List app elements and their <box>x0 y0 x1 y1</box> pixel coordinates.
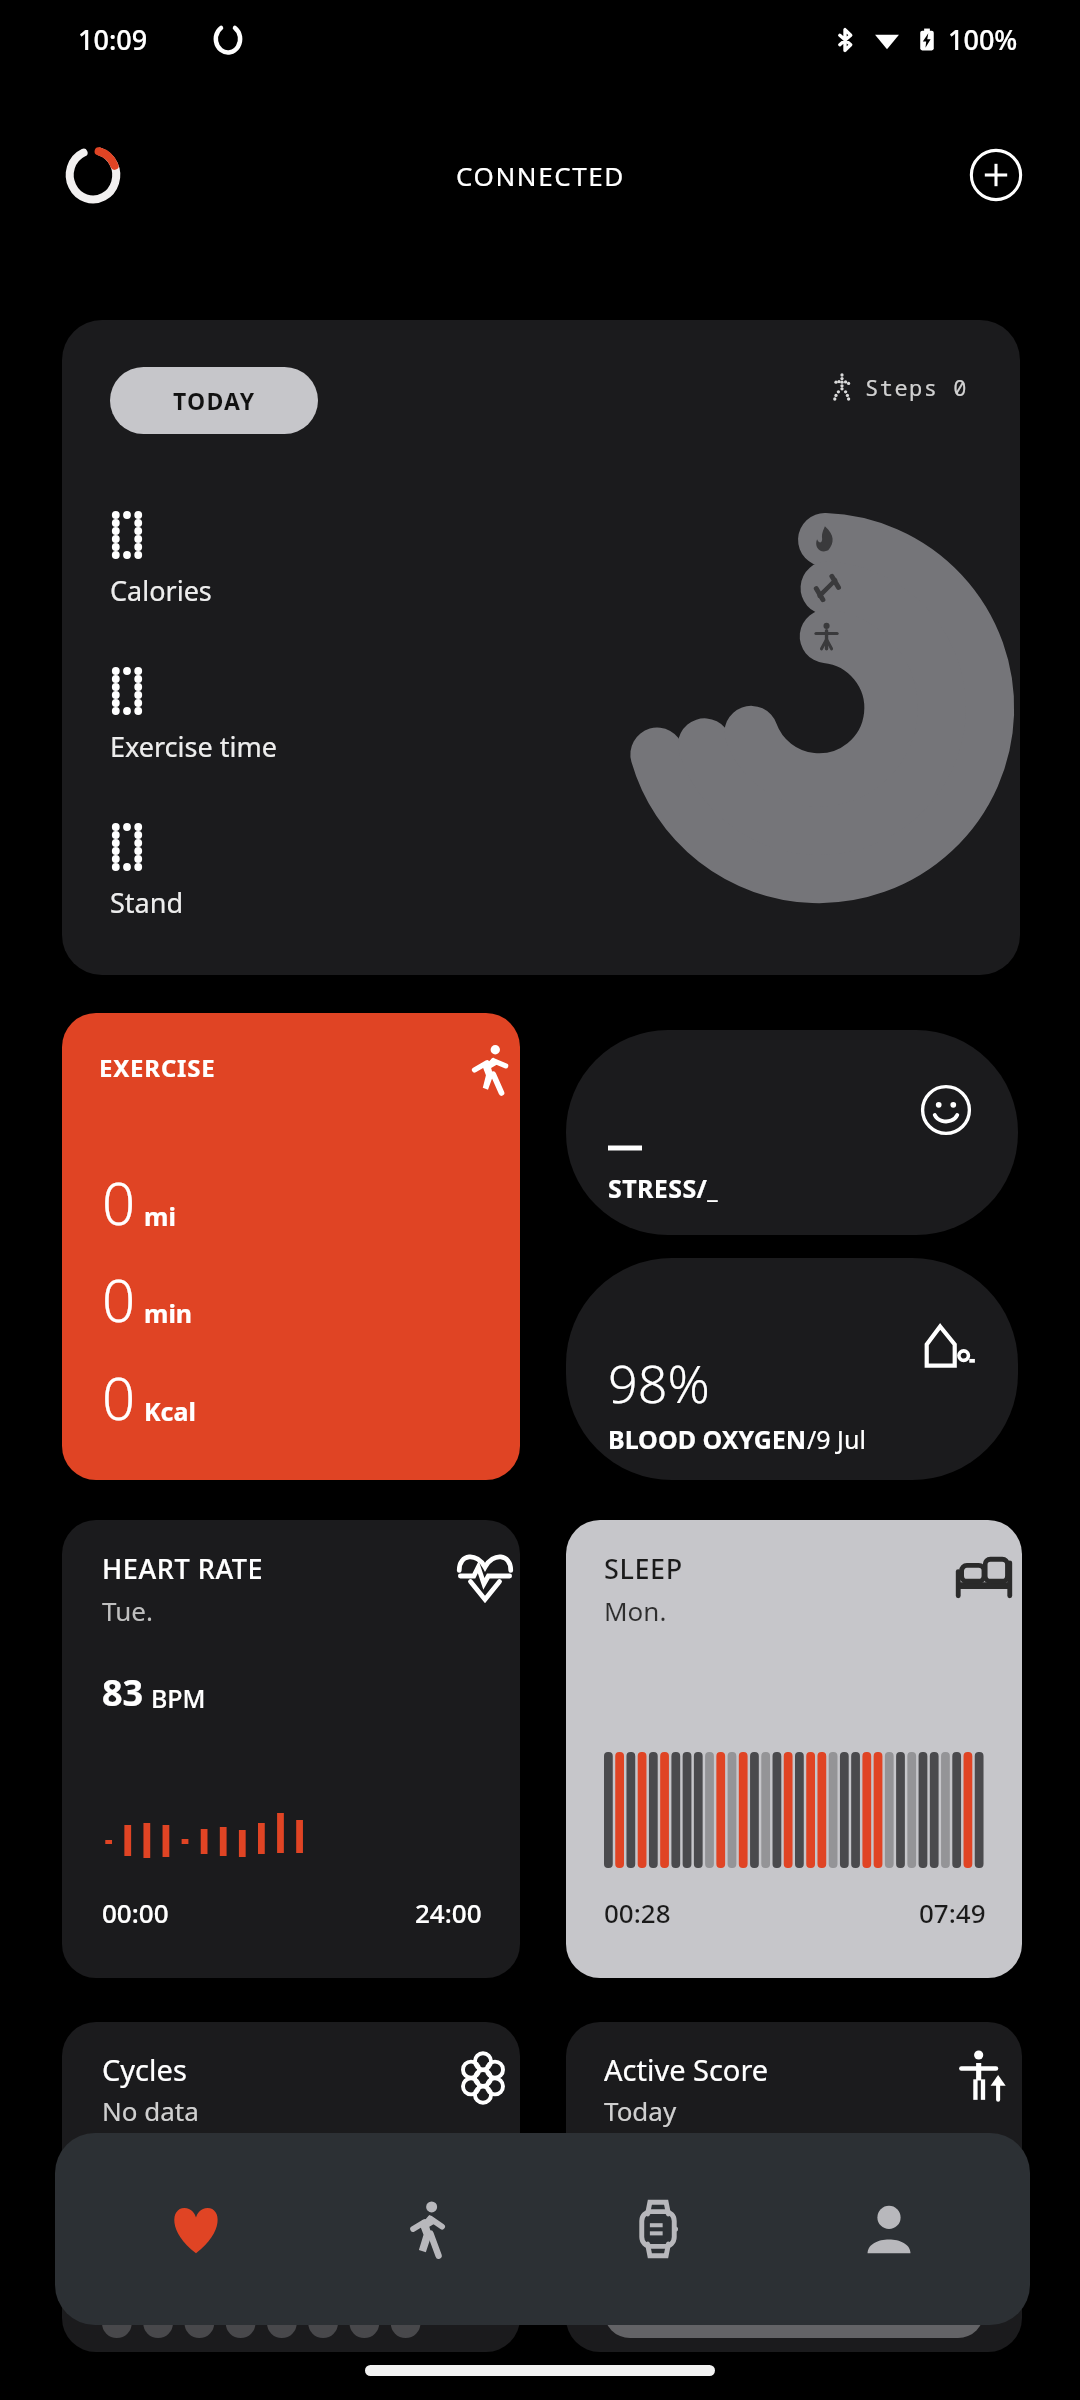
staticText: BLOOD OXYGEN <box>608 1422 807 1456</box>
button[interactable]: Profile <box>799 2139 979 2319</box>
staticText: 0 <box>102 1163 136 1242</box>
staticText: CONNECTED <box>456 158 625 193</box>
staticText: 10:09 <box>78 21 148 58</box>
staticText: mi <box>144 1199 176 1233</box>
staticText: Today <box>604 2093 677 2128</box>
staticText: Cycles <box>102 2050 187 2089</box>
button[interactable]: TODAY <box>62 320 1020 975</box>
button[interactable]: Active Score <box>566 2022 1022 2352</box>
staticText: 00:28 <box>604 1895 671 1930</box>
staticText: 0 <box>102 1358 136 1437</box>
button[interactable]: TODAY <box>110 367 318 434</box>
staticText: Kcal <box>144 1394 196 1428</box>
button[interactable]: Health <box>106 2139 286 2319</box>
button[interactable]: 98% <box>566 1258 1018 1480</box>
staticText: EXERCISE <box>99 1051 216 1084</box>
staticText: /9 Jul <box>807 1422 866 1456</box>
staticText: Stand <box>110 884 184 921</box>
staticText: HEART RATE <box>102 1550 264 1587</box>
staticText: TODAY <box>173 385 256 416</box>
staticText: 98% <box>608 1347 710 1418</box>
staticText: Steps 0 <box>865 372 968 402</box>
staticText: No data <box>102 2093 199 2128</box>
staticText: Mon. <box>604 1593 667 1628</box>
button[interactable]: Add <box>968 147 1024 203</box>
staticText: STRESS/_ <box>608 1171 719 1205</box>
button[interactable]: Device <box>568 2139 748 2319</box>
staticText: SLEEP <box>604 1550 683 1587</box>
staticText: 83 <box>102 1668 144 1717</box>
button[interactable]: Cycles <box>62 2022 520 2352</box>
staticText: 0 <box>102 1260 136 1339</box>
button[interactable]: HEART RATE <box>62 1520 520 1978</box>
button[interactable]: EXERCISE <box>62 1013 520 1480</box>
staticText: Calories <box>110 572 212 609</box>
staticText: 07:49 <box>919 1895 986 1930</box>
button[interactable]: SLEEP <box>566 1520 1022 1978</box>
button[interactable]: Device <box>62 144 124 206</box>
staticText: Tue. <box>102 1593 153 1628</box>
staticText: 100% <box>948 21 1018 58</box>
staticText: Exercise time <box>110 728 277 765</box>
staticText: 00:00 <box>102 1895 169 1930</box>
staticText: min <box>144 1296 193 1330</box>
button[interactable]: Activity <box>337 2139 517 2319</box>
staticText: Active Score <box>604 2050 769 2089</box>
button[interactable]: STRESS/_ <box>566 1030 1018 1235</box>
staticText: 24:00 <box>415 1895 482 1930</box>
staticText: BPM <box>151 1681 206 1715</box>
